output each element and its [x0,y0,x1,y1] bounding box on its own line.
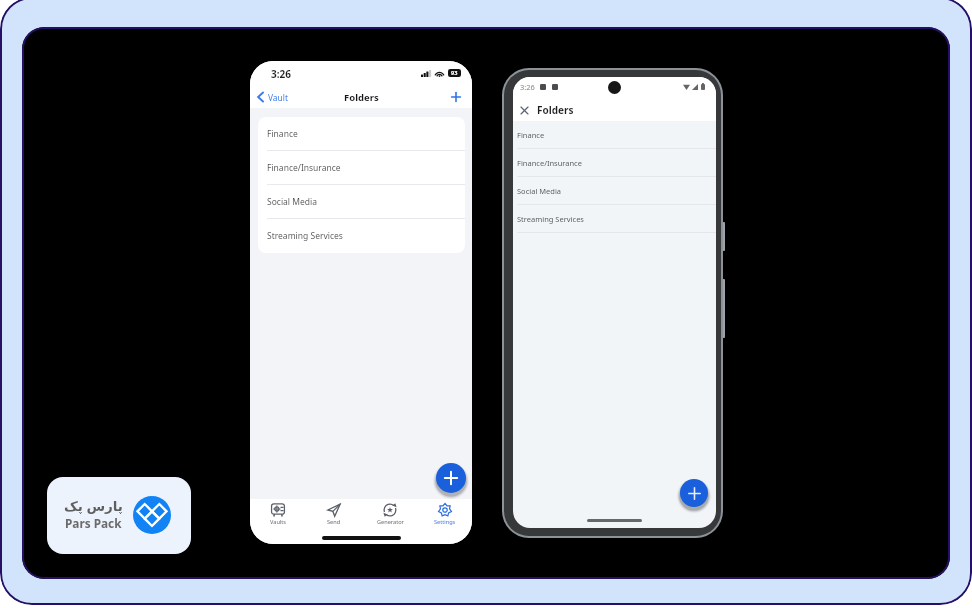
button[interactable]: Social Media [513,177,716,205]
staticText: Generator [377,518,404,526]
staticText: Vault [268,92,288,103]
button[interactable]: Close [516,102,533,119]
button[interactable]: Send [312,501,356,526]
staticText: پارس پک [64,497,123,515]
button[interactable]: Finance [513,121,716,149]
staticText: Pars Pack [65,515,122,531]
staticText: Vaults [270,518,286,526]
button[interactable]: Add folder [680,479,708,507]
button[interactable]: Social Media [258,185,465,219]
staticText: Folders [344,91,379,104]
staticText: 3:26 [271,67,291,81]
button[interactable]: Finance/Insurance [258,151,465,185]
staticText: Streaming Services [517,214,584,224]
staticText: Finance/Insurance [267,162,341,174]
button[interactable]: Streaming Services [258,219,465,253]
button[interactable]: Finance/Insurance [513,149,716,177]
staticText: 3:26 [520,82,535,92]
button[interactable]: Add [447,88,465,106]
button[interactable]: Vault [255,89,290,105]
staticText: Social Media [267,196,317,208]
button[interactable]: Streaming Services [513,205,716,233]
button[interactable]: Settings [423,501,467,526]
staticText: 93 [451,69,458,77]
button[interactable]: Vaults [256,501,300,526]
staticText: Streaming Services [267,230,343,242]
button[interactable]: Generator [368,501,412,526]
staticText: Finance/Insurance [517,158,582,168]
staticText: Finance [517,130,545,140]
staticText: Folders [537,103,574,117]
button[interactable]: Finance [258,117,465,151]
staticText: Send [327,518,341,526]
staticText: Finance [267,128,298,140]
staticText: Settings [434,518,456,526]
staticText: Social Media [517,186,562,196]
button[interactable]: Add folder [436,463,466,493]
